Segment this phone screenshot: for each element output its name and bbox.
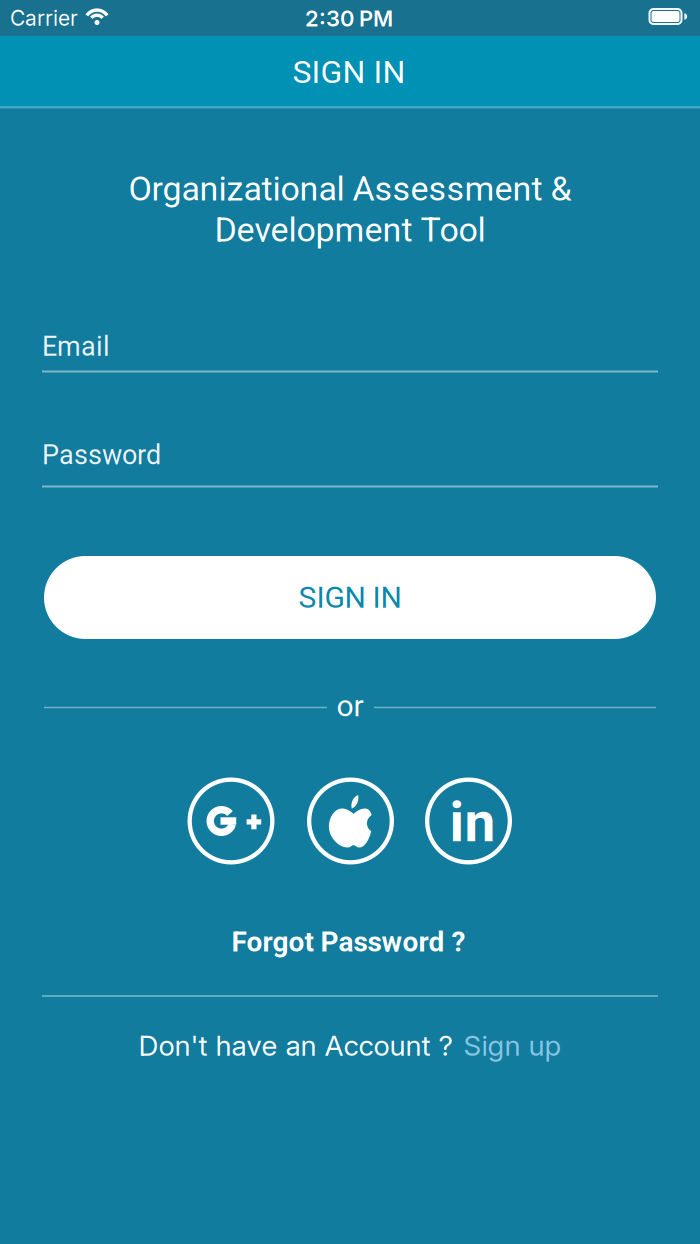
staticText: Email	[42, 331, 110, 362]
button[interactable]: Email	[42, 317, 658, 375]
staticText: Development Tool	[214, 210, 485, 250]
button[interactable]: Sign in with LinkedIn	[425, 777, 512, 864]
button[interactable]: Sign in with Apple	[307, 777, 394, 864]
staticText: or	[336, 688, 363, 724]
button[interactable]: SIGN IN	[44, 556, 656, 639]
button[interactable]: Password	[42, 426, 658, 484]
staticText: SIGN IN	[298, 580, 401, 615]
staticText: Carrier	[10, 5, 78, 31]
button[interactable]: Sign up	[463, 1029, 561, 1062]
staticText: SIGN IN	[292, 53, 405, 91]
button[interactable]: Sign in with Google	[187, 777, 274, 864]
staticText: Sign up	[463, 1029, 561, 1062]
staticText: Don't have an Account ?	[138, 1029, 452, 1062]
staticText: 2:30 PM	[305, 5, 393, 32]
staticText: in	[449, 790, 495, 855]
staticText: Organizational Assessment &	[128, 169, 571, 209]
button[interactable]: Forgot Password ?	[231, 926, 465, 958]
staticText: Forgot Password ?	[231, 926, 465, 958]
staticText: Password	[42, 439, 161, 471]
